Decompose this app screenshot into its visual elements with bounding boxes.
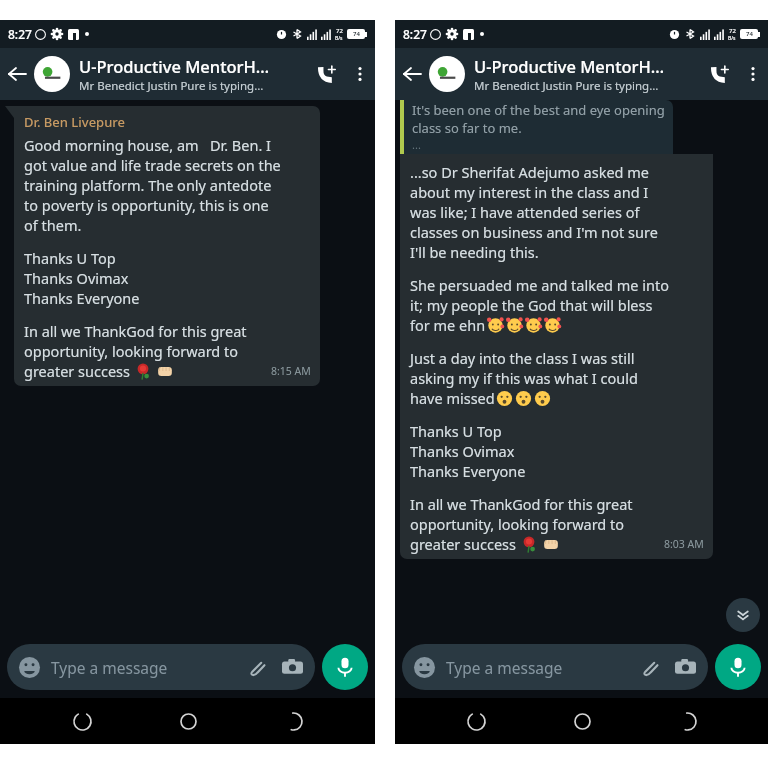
button[interactable]: Recents — [452, 698, 500, 744]
button[interactable]: Video call — [700, 48, 738, 100]
button[interactable]: More options — [738, 48, 768, 100]
staticText: 8:27 — [403, 26, 427, 42]
staticText: I'll be needing this. — [410, 242, 539, 262]
staticText: U-Productive MentorH… — [474, 55, 665, 77]
staticText: ... — [412, 137, 421, 152]
button[interactable]: Voice message — [322, 644, 368, 690]
button[interactable]: U-Productive MentorH… — [474, 55, 700, 94]
other: Camera — [675, 657, 696, 678]
staticText: B/s — [728, 35, 736, 42]
staticText: 8:03 AM — [664, 537, 704, 551]
staticText: classes on business and I'm not sure — [410, 222, 658, 242]
staticText: to poverty is opportunity, this is one — [24, 195, 269, 215]
staticText: have missed — [410, 388, 495, 408]
staticText: Type a message — [446, 657, 563, 678]
button[interactable]: Recents — [58, 698, 106, 744]
staticText: of them. — [24, 215, 82, 235]
button[interactable]: Dr. Ben Livepure — [14, 106, 320, 386]
staticText: Good morning house, am Dr. Ben. I — [24, 135, 271, 155]
staticText: training platform. The only antedote — [24, 175, 272, 195]
button[interactable]: Home — [164, 698, 212, 744]
button[interactable]: U-Productive MentorH… — [79, 55, 307, 94]
staticText: She persuaded me and talked me into — [410, 275, 669, 295]
staticText: got value and life trade secrets on the — [24, 155, 281, 175]
button[interactable]: Scroll to bottom — [726, 598, 760, 632]
button[interactable]: Type a message — [7, 644, 315, 690]
staticText: It's been one of the best and eye openin… — [412, 101, 665, 119]
staticText: 72 — [729, 27, 736, 35]
button[interactable]: Voice message — [715, 644, 761, 690]
staticText: about my interest in the class and I — [410, 182, 649, 202]
staticText: Thanks Everyone — [24, 288, 140, 308]
staticText: asking my if this was what I could — [410, 368, 638, 388]
button[interactable]: ...so Dr Sherifat Adejumo asked me — [400, 154, 713, 559]
staticText: Thanks U Top — [24, 248, 116, 268]
button[interactable]: Back — [663, 698, 711, 744]
staticText: it; my people the God that will bless — [410, 295, 653, 315]
staticText: Thanks U Top — [410, 421, 502, 441]
staticText: ...so Dr Sherifat Adejumo asked me — [410, 162, 650, 182]
staticText: Type a message — [51, 657, 168, 678]
other: Attach — [247, 658, 266, 677]
button[interactable]: Type a message — [402, 644, 708, 690]
button[interactable]: Back — [395, 48, 429, 100]
button[interactable]: Video call — [307, 48, 345, 100]
staticText: 72 — [336, 27, 343, 35]
staticText: class so far to me. — [412, 119, 522, 137]
button[interactable]: More options — [345, 48, 375, 100]
other: Attach — [640, 658, 659, 677]
staticText: Thanks Ovimax — [24, 268, 129, 288]
staticText: Thanks Ovimax — [410, 441, 515, 461]
staticText: for me ehn — [410, 315, 486, 335]
button[interactable]: Back — [0, 48, 34, 100]
staticText: opportunity, looking forward to — [24, 341, 239, 361]
staticText: Thanks Everyone — [410, 461, 526, 481]
staticText: In all we ThankGod for this great — [24, 321, 247, 341]
staticText: B/s — [335, 35, 343, 42]
button[interactable]: Back — [269, 698, 317, 744]
staticText: U-Productive MentorH… — [79, 55, 270, 77]
staticText: opportunity, looking forward to — [410, 514, 625, 534]
button[interactable]: Home — [558, 698, 606, 744]
staticText: In all we ThankGod for this great — [410, 494, 633, 514]
staticText: Mr Benedict Justin Pure is typing… — [474, 78, 659, 94]
staticText: greater success — [410, 534, 520, 554]
staticText: 74 — [746, 30, 753, 38]
staticText: 8:15 AM — [271, 364, 311, 378]
staticText: Just a day into the class I was still — [410, 348, 635, 368]
staticText: was like; I have attended series of — [410, 202, 640, 222]
staticText: greater success — [24, 361, 134, 381]
staticText: 8:27 — [8, 26, 32, 42]
staticText: 74 — [353, 30, 360, 38]
other: Camera — [282, 657, 303, 678]
staticText: Dr. Ben Livepure — [24, 113, 126, 131]
staticText: Mr Benedict Justin Pure is typing… — [79, 78, 264, 94]
